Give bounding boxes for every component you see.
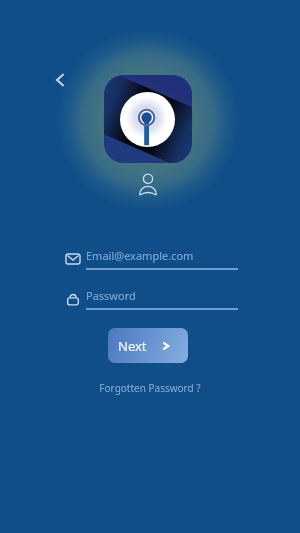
button[interactable]: Back xyxy=(48,68,72,92)
button[interactable]: Next xyxy=(108,328,188,363)
staticText: Next xyxy=(118,337,147,355)
staticText: Forgotten Password ? xyxy=(99,381,201,395)
staticText: Password xyxy=(86,288,136,303)
button[interactable]: Forgotten Password ? xyxy=(0,381,300,395)
staticText: Email@example.com xyxy=(86,248,194,263)
